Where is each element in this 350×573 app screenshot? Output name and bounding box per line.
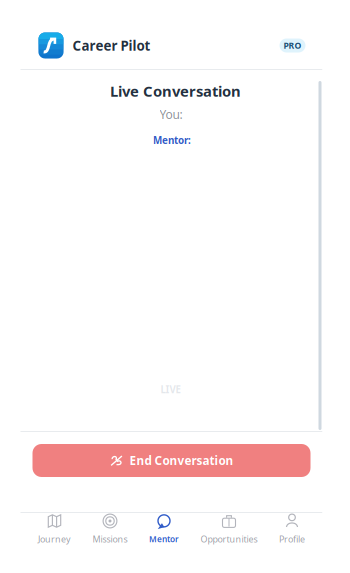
button[interactable]: End Conversation <box>32 444 310 477</box>
button[interactable]: Opportunities <box>200 514 257 545</box>
button[interactable]: Mentor <box>149 514 179 545</box>
staticText: End Conversation <box>129 452 233 468</box>
staticText: Mentor: <box>153 133 191 147</box>
staticText: Journey <box>38 533 71 545</box>
staticText: Mentor <box>149 533 179 545</box>
button[interactable]: Journey <box>38 514 71 545</box>
button[interactable]: Missions <box>92 514 127 545</box>
staticText: Profile <box>279 533 305 545</box>
staticText: Career Pilot <box>72 36 150 55</box>
staticText: PRO <box>283 40 301 51</box>
staticText: Missions <box>92 533 127 545</box>
staticText: You: <box>159 106 182 122</box>
button[interactable]: PRO <box>279 38 305 52</box>
staticText: Live Conversation <box>110 81 241 101</box>
staticText: Opportunities <box>200 533 257 545</box>
staticText: LIVE <box>160 383 180 396</box>
button[interactable]: Profile <box>279 514 305 545</box>
